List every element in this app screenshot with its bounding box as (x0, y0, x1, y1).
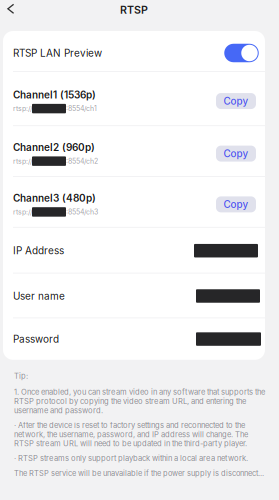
staticText: rtsp:// (13, 157, 32, 165)
staticText: Copy (223, 95, 248, 107)
staticText: Tip: (14, 371, 28, 380)
button[interactable]: RTSP LAN Preview (3, 31, 265, 71)
staticText: rtsp:// (13, 104, 32, 113)
staticText: RTSP LAN Preview (13, 47, 102, 59)
button[interactable]: Back (0, 0, 24, 21)
staticText: Channel2 (960p) (13, 141, 95, 153)
staticText: Channel1 (1536p) (13, 89, 96, 101)
staticText: The RTSP service will be unavailable if … (14, 469, 264, 478)
staticText: Password (13, 333, 59, 345)
staticText: User name (13, 290, 65, 302)
button[interactable]: Copy (216, 146, 256, 162)
button[interactable]: Copy (216, 93, 256, 109)
staticText: · After the device is reset to factory s… (14, 421, 248, 448)
staticText: 1. Once enabled, you can stream video in… (14, 387, 265, 415)
staticText: :8554/ch3 (66, 208, 98, 216)
staticText: Copy (223, 198, 248, 210)
staticText: :8554/ch1 (66, 104, 97, 113)
staticText: rtsp:// (13, 208, 32, 216)
staticText: RTSP (120, 3, 148, 16)
staticText: Channel3 (480p) (13, 192, 96, 204)
button[interactable]: Copy (216, 196, 256, 212)
staticText: Copy (223, 148, 248, 159)
staticText: :8554/ch2 (66, 157, 98, 165)
staticText: · RTSP streams only support playback wit… (14, 454, 248, 463)
staticText: IP Address (13, 245, 64, 257)
